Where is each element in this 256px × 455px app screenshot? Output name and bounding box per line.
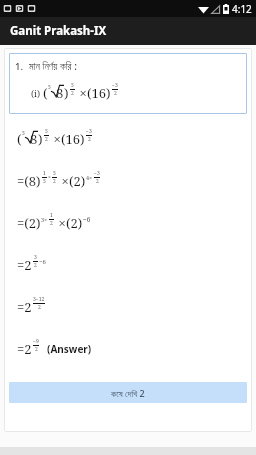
staticText: =(2) <box>17 214 41 232</box>
staticText: 4× <box>86 174 93 181</box>
button[interactable]: কষে দেখি 2 <box>9 382 247 403</box>
staticText: 2 <box>45 136 48 143</box>
staticText: 2 <box>96 178 99 185</box>
staticText: −9 <box>33 338 39 345</box>
staticText: 2 <box>38 304 41 311</box>
staticText: 5 <box>45 128 48 135</box>
staticText: ( <box>17 130 22 148</box>
staticText: (16) <box>61 130 85 148</box>
staticText: × <box>76 84 87 102</box>
staticText: −6 <box>83 215 91 224</box>
staticText: (i) <box>31 87 43 99</box>
staticText: ) <box>64 84 69 102</box>
staticText: 2 <box>53 178 56 185</box>
staticText: 5 <box>53 170 56 177</box>
staticText: 4:12 <box>232 2 252 16</box>
staticText: −3 <box>86 128 92 135</box>
staticText: =2 <box>17 298 32 316</box>
staticText: 2 <box>50 220 53 227</box>
staticText: মান নির্ণয় করি : <box>29 59 77 73</box>
staticText: (Answer) <box>47 342 92 356</box>
staticText: 2 <box>35 346 38 353</box>
staticText: −6 <box>39 258 46 266</box>
staticText: −3 <box>112 82 118 89</box>
staticText: কষে দেখি 2 <box>111 387 145 399</box>
staticText: 2 <box>34 262 37 269</box>
staticText: Ganit Prakash-IX <box>10 23 107 39</box>
staticText: 3× <box>41 216 48 223</box>
staticText: −3 <box>94 170 100 177</box>
button[interactable]: 1. <box>9 53 247 114</box>
staticText: × <box>55 214 66 232</box>
staticText: 2 <box>71 90 74 97</box>
staticText: =2 <box>17 256 32 274</box>
staticText: 5 <box>71 82 74 89</box>
staticText: 1 <box>50 212 53 219</box>
staticText: 2 <box>88 136 91 143</box>
staticText: 5 <box>22 130 25 137</box>
staticText: 8 <box>30 130 38 148</box>
staticText: 5 <box>48 84 51 91</box>
staticText: × <box>48 174 51 181</box>
staticText: 2 <box>114 90 117 97</box>
staticText: (2) <box>66 214 83 232</box>
staticText: =(8) <box>17 172 41 190</box>
staticText: 1 <box>43 170 46 177</box>
staticText: =2 <box>17 340 32 358</box>
staticText: 5 <box>43 178 46 185</box>
staticText: ( <box>43 84 48 102</box>
staticText: (16) <box>87 84 111 102</box>
staticText: 8 <box>56 84 64 102</box>
staticText: 3−12 <box>33 296 45 303</box>
staticText: × <box>58 172 69 190</box>
staticText: 3 <box>34 254 37 261</box>
staticText: 1. <box>15 60 24 73</box>
staticText: ) <box>38 130 43 148</box>
staticText: (2) <box>69 172 86 190</box>
staticText: × <box>50 130 61 148</box>
